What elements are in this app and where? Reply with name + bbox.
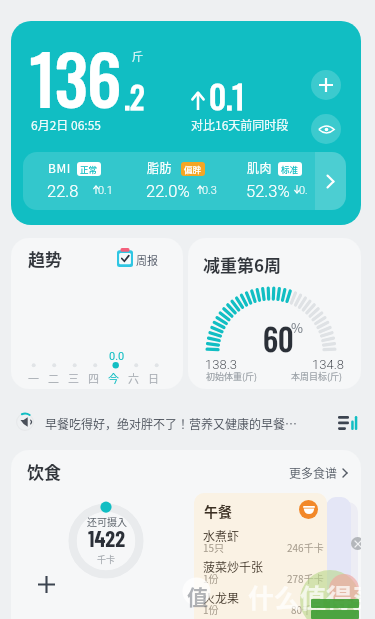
staticText: 火龙果 [203, 589, 240, 606]
staticText: 什么值得买 [248, 578, 361, 616]
staticText: 正常 [80, 163, 98, 175]
staticText: 1422 [88, 524, 125, 551]
staticText: 水煮虾 [203, 527, 240, 544]
staticText: 减重第6周 [203, 252, 282, 277]
staticText: 值 [187, 581, 208, 611]
staticText: 本周目标(斤) [291, 370, 343, 383]
button[interactable]: Playlist [336, 413, 358, 433]
staticText: 一 [28, 370, 39, 386]
staticText: 15只 [203, 540, 225, 554]
button[interactable]: 午餐 [194, 493, 327, 619]
staticText: 二 [48, 370, 59, 386]
staticText: 1份 [203, 602, 219, 616]
button[interactable]: 早餐吃得好，绝对胖不了！营养又健康的早餐… [0, 400, 375, 445]
staticText: 午餐 [204, 501, 232, 521]
staticText: 今 [108, 370, 119, 386]
staticText: 136 [30, 27, 121, 126]
staticText: % [291, 318, 303, 337]
button[interactable]: 减重第6周 [188, 238, 361, 389]
staticText: 6月2日 06:55 [31, 116, 101, 133]
staticText: 1份 [203, 571, 219, 585]
staticText: 日 [148, 370, 159, 386]
staticText: 0.0 [109, 350, 125, 363]
staticText: 138.3 [205, 357, 237, 372]
staticText: 肌肉 [247, 159, 273, 176]
staticText: 早餐吃得好，绝对胖不了！营养又健康的早餐… [45, 415, 298, 432]
staticText: 四 [88, 370, 99, 386]
staticText: 还可摄入 [87, 514, 127, 528]
button[interactable]: Add weight [311, 70, 341, 100]
staticText: 斤 [132, 48, 143, 64]
staticText: 对比16天前同时段 [191, 116, 289, 133]
staticText: 六 [128, 370, 139, 386]
button[interactable]: Toggle visibility [311, 114, 341, 144]
staticText: 更多食谱 [289, 464, 338, 481]
button[interactable]: Close [351, 537, 361, 550]
staticText: 134.8 [312, 357, 344, 372]
staticText: BMI [48, 159, 71, 176]
staticText: 60 [263, 316, 294, 360]
staticText: 趋势 [28, 246, 62, 271]
staticText: 80千卡 [291, 602, 323, 616]
staticText: 246千卡 [287, 540, 324, 554]
staticText: 饮食 [27, 459, 61, 484]
staticText: 菠菜炒千张 [203, 558, 264, 575]
staticText: 0. [299, 184, 308, 197]
staticText: 脂肪 [147, 159, 173, 176]
button[interactable]: More body metrics [315, 152, 346, 210]
staticText: 千卡 [97, 553, 116, 566]
staticText: 0.1 [209, 71, 245, 120]
staticText: 22.0% [146, 182, 190, 201]
staticText: 0.3 [202, 184, 217, 197]
staticText: 偏胖 [184, 163, 202, 175]
button[interactable]: 更多食谱 [289, 464, 348, 481]
staticText: 278千卡 [287, 571, 324, 585]
staticText: 0.1 [98, 184, 113, 197]
staticText: 初始体重(斤) [206, 370, 258, 383]
button[interactable]: 趋势 [11, 238, 183, 389]
staticText: 三 [68, 370, 79, 386]
staticText: 标准 [281, 163, 299, 175]
button[interactable]: Add meal [33, 571, 59, 597]
staticText: 22.8 [47, 182, 79, 201]
staticText: .2 [124, 73, 145, 119]
staticText: 周报 [136, 252, 158, 268]
staticText: 52.3% [246, 182, 290, 201]
